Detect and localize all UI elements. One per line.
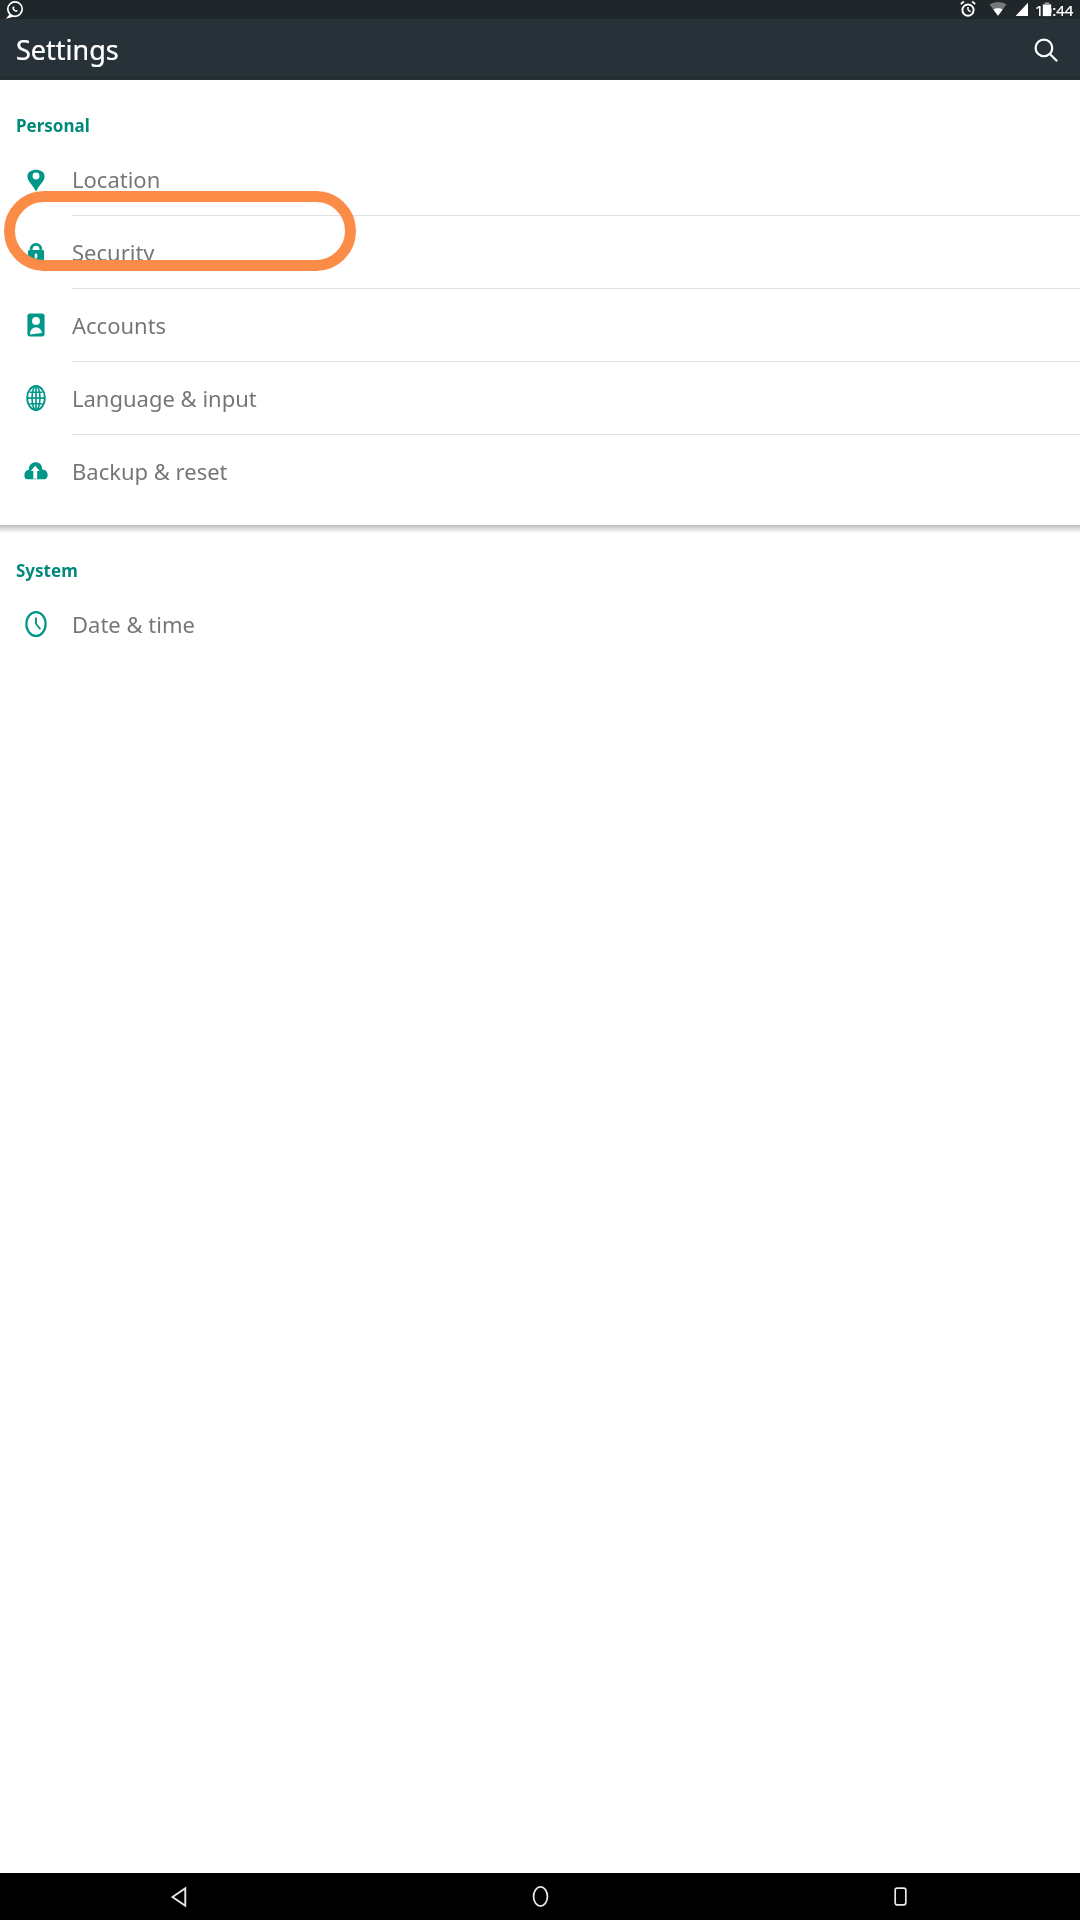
button[interactable]: Backup & reset xyxy=(0,435,1080,507)
staticText: Language & input xyxy=(72,383,257,413)
staticText: Date & time xyxy=(72,609,195,639)
staticText: Backup & reset xyxy=(72,456,228,486)
staticText: 19:44 xyxy=(1035,0,1074,19)
staticText: Location xyxy=(72,164,161,194)
staticText: Accounts xyxy=(72,310,167,340)
button[interactable]: Recent apps xyxy=(720,1873,1080,1920)
staticText: Settings xyxy=(16,31,119,68)
button[interactable]: Date & time xyxy=(0,588,1080,660)
button[interactable]: Search xyxy=(1022,26,1070,74)
button[interactable]: Accounts xyxy=(0,289,1080,361)
button[interactable]: Home xyxy=(360,1873,720,1920)
button[interactable]: Back xyxy=(0,1873,360,1920)
staticText: System xyxy=(16,559,78,582)
button[interactable]: Location xyxy=(0,143,1080,215)
button[interactable]: Language & input xyxy=(0,362,1080,434)
staticText: Security xyxy=(72,237,155,267)
staticText: Personal xyxy=(16,114,90,137)
button[interactable]: Security xyxy=(0,216,1080,288)
